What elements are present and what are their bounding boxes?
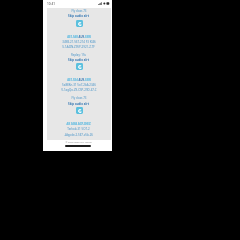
staticText: © 2024 Metro Ltd · Terms xyxy=(65,141,92,144)
staticText: AE1.548 AU9-SSW xyxy=(67,35,91,39)
staticText: Fly class 73 xyxy=(71,96,87,100)
staticText: A9 3484 ACP-IHEZ xyxy=(66,122,91,126)
staticText: V-1agQo-Z9-CSP-29D-47-C xyxy=(61,88,97,92)
staticText: Skip audio alrt xyxy=(68,14,89,18)
staticText: Skip audio alrt xyxy=(68,102,89,106)
staticText: Tarkab-31 5O7-2 xyxy=(67,127,90,131)
staticText: 10:41 xyxy=(47,2,55,6)
button[interactable]: Replay audio alert xyxy=(76,107,83,114)
staticText: AE1.534 AU9-SSW xyxy=(67,78,91,82)
button[interactable]: Replay audio alert xyxy=(76,20,83,27)
staticText: 349B-21.567-214 F3 KI46 xyxy=(62,40,96,44)
staticText: -Alqpde-2-5E7-z5b-26 xyxy=(64,133,93,137)
staticText: S-1A4IN-Z9SP-2921-Z-TF xyxy=(62,45,95,49)
staticText: Skip audio alrt xyxy=(68,58,89,62)
staticText: Fly class 73 xyxy=(71,9,87,13)
staticText: 5a88Kn-31 5o7-2bA 2346 xyxy=(62,83,96,87)
staticText: Replay: 15s xyxy=(71,53,86,57)
button[interactable]: Replay audio alert xyxy=(76,63,83,70)
